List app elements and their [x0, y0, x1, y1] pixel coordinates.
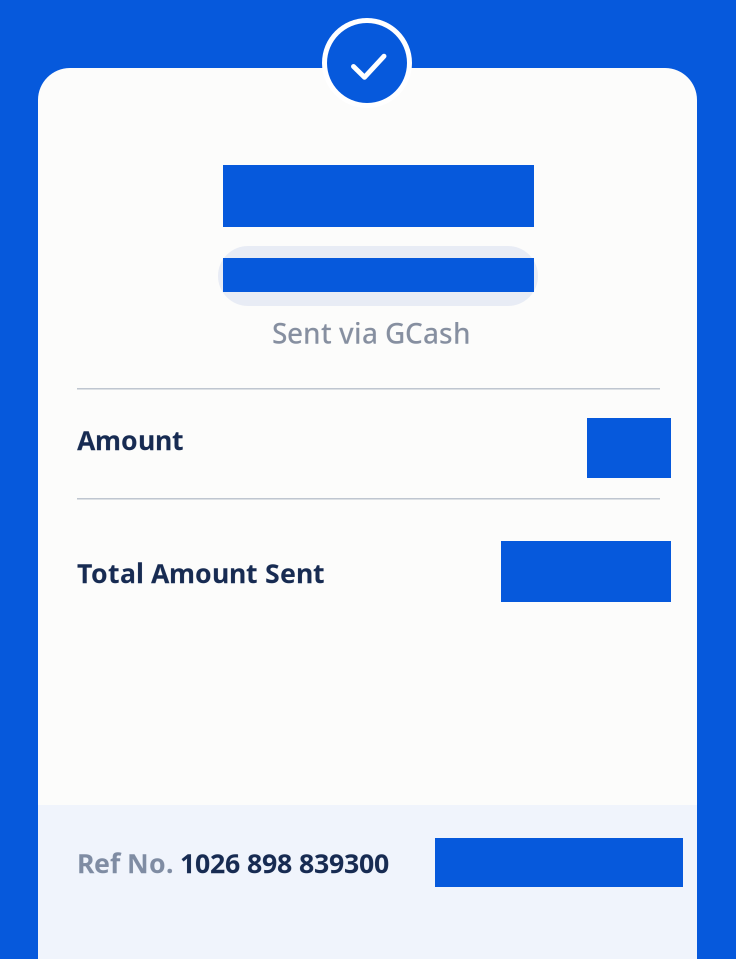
staticText: 1026 898 839300: [180, 845, 389, 881]
staticText: Ref No.: [77, 845, 180, 881]
staticText: Sent via GCash: [272, 314, 471, 352]
staticText: Amount: [77, 422, 184, 458]
button[interactable]: Ref No. 1026 898 839300: [77, 848, 658, 878]
staticText: Total Amount Sent: [77, 555, 325, 591]
